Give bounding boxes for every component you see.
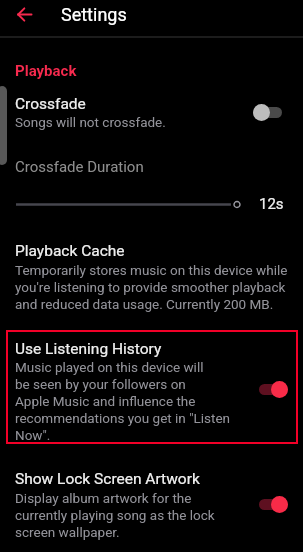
button[interactable]: Playback Cache [0, 236, 303, 318]
button[interactable]: Show Lock Screen Artwork [0, 466, 303, 544]
staticText: Music played on this device will be seen… [15, 359, 231, 443]
staticText: Temporarily stores music on this device … [15, 262, 288, 312]
staticText: Use Listening History [15, 340, 162, 358]
staticText: 12s [259, 195, 284, 213]
staticText: Settings [61, 4, 127, 25]
staticText: Playback [15, 62, 77, 80]
staticText: Show Lock Screen Artwork [15, 470, 200, 488]
staticText: Playback Cache [15, 242, 125, 260]
button[interactable]: Use Listening History [6, 330, 298, 444]
button[interactable]: Back [11, 1, 37, 27]
button[interactable]: Crossfade, off [247, 98, 287, 126]
button[interactable]: Use Listening History, on [253, 375, 293, 403]
button[interactable]: Crossfade duration slider [0, 192, 303, 218]
staticText: Crossfade Duration [15, 158, 144, 176]
button[interactable]: Show Lock Screen Artwork, on [253, 490, 293, 518]
button[interactable]: Crossfade [0, 90, 303, 136]
staticText: Crossfade [15, 95, 86, 113]
staticText: Songs will not crossfade. [15, 114, 166, 130]
staticText: Display album artwork for the currently … [15, 490, 215, 540]
